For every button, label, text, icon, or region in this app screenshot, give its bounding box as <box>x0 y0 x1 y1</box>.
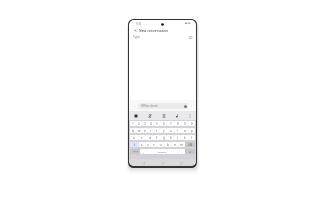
staticText: ⌫ <box>188 143 193 146</box>
staticText: f <box>156 136 158 140</box>
button[interactable]: Add <box>190 104 193 107</box>
staticText: c <box>153 143 155 147</box>
button[interactable]: Nav 2 <box>178 160 184 166</box>
staticText: x <box>147 143 149 147</box>
button[interactable]: 5 <box>154 121 160 126</box>
button[interactable]: Expand <box>133 104 136 107</box>
button[interactable]: k <box>181 135 188 140</box>
staticText: z <box>141 143 143 147</box>
staticText: ↵ <box>189 150 192 153</box>
button[interactable]: h <box>167 135 174 140</box>
button[interactable]: i <box>174 128 181 133</box>
button[interactable]: e <box>142 128 148 133</box>
button[interactable]: 1 <box>130 121 136 126</box>
staticText: ⇧ <box>133 143 136 147</box>
staticText: d <box>149 136 151 140</box>
staticText: ?123 <box>133 150 138 153</box>
staticText: □ <box>180 162 183 165</box>
staticText: i <box>177 129 178 133</box>
button[interactable]: ⌫ <box>185 142 195 147</box>
button[interactable]: z <box>139 142 145 147</box>
staticText: v <box>160 143 162 147</box>
button[interactable]: 0 <box>188 121 195 126</box>
button[interactable]: Nav 0 <box>141 160 147 166</box>
button[interactable]: ?123 <box>130 149 140 154</box>
button[interactable]: Nav 1 <box>160 160 166 166</box>
button[interactable]: 9 <box>181 121 188 126</box>
staticText: ◁ <box>143 162 145 165</box>
staticText: 3 <box>144 122 146 126</box>
button[interactable]: s <box>138 135 146 140</box>
button[interactable]: 6 <box>160 121 167 126</box>
staticText: 9 <box>184 122 186 126</box>
staticText: New conversation <box>139 28 169 33</box>
button[interactable]: p <box>188 128 195 133</box>
staticText: p <box>191 129 193 133</box>
button[interactable]: Voice <box>170 111 183 120</box>
staticText: l <box>191 136 192 140</box>
button[interactable]: d <box>146 135 153 140</box>
button[interactable]: English <box>147 149 178 154</box>
button[interactable]: v <box>157 142 164 147</box>
button[interactable]: c <box>151 142 157 147</box>
staticText: q <box>132 129 134 133</box>
button[interactable]: ⇧ <box>130 142 139 147</box>
staticText: t <box>156 129 158 133</box>
button[interactable]: t <box>154 128 160 133</box>
button[interactable]: q <box>130 128 136 133</box>
staticText: b <box>167 143 169 147</box>
staticText: 8 <box>177 122 179 126</box>
button[interactable]: l <box>188 135 195 140</box>
button[interactable]: 3 <box>142 121 148 126</box>
staticText: 7 <box>170 122 172 126</box>
button[interactable]: 7 <box>167 121 174 126</box>
button[interactable]: o <box>181 128 188 133</box>
staticText: 0 <box>191 122 193 126</box>
button[interactable]: Settings <box>157 111 170 120</box>
button[interactable]: w <box>136 128 142 133</box>
staticText: e <box>144 129 146 133</box>
staticText: English <box>158 150 167 153</box>
staticText: . <box>181 150 182 154</box>
staticText: j <box>177 136 178 140</box>
staticText: r <box>150 129 152 133</box>
button[interactable]: Offline check <box>138 103 188 109</box>
staticText: y <box>163 129 165 133</box>
button[interactable]: n <box>171 142 178 147</box>
button[interactable]: Scan <box>189 36 192 39</box>
staticText: ○ <box>162 162 165 165</box>
staticText: h <box>170 136 172 140</box>
staticText: Type <box>133 35 141 39</box>
button[interactable]: f <box>153 135 160 140</box>
button[interactable]: u <box>167 128 174 133</box>
button[interactable]: y <box>160 128 167 133</box>
button[interactable]: j <box>174 135 181 140</box>
staticText: n <box>174 143 176 147</box>
button[interactable]: 8 <box>174 121 181 126</box>
button[interactable]: Emoji <box>129 111 143 120</box>
button[interactable]: More <box>183 111 196 120</box>
staticText: k <box>184 136 186 140</box>
button[interactable]: , <box>140 149 147 154</box>
button[interactable]: g <box>160 135 167 140</box>
button[interactable]: . <box>178 149 185 154</box>
button[interactable]: Stickers <box>143 111 157 120</box>
button[interactable]: x <box>145 142 151 147</box>
staticText: 6 <box>163 122 165 126</box>
staticText: g <box>163 136 165 140</box>
button[interactable]: 2 <box>136 121 142 126</box>
button[interactable]: r <box>148 128 154 133</box>
staticText: 2 <box>138 122 140 126</box>
button[interactable]: 4 <box>148 121 154 126</box>
button[interactable]: m <box>178 142 185 147</box>
staticText: , <box>143 150 144 154</box>
staticText: 5 <box>156 122 158 126</box>
staticText: 1 <box>132 122 134 126</box>
button[interactable]: Back <box>133 28 138 33</box>
button[interactable]: ↵ <box>185 149 195 154</box>
staticText: ● ▮ ▮ <box>185 22 191 25</box>
button[interactable]: a <box>130 135 138 140</box>
staticText: s <box>141 136 143 140</box>
staticText: Offline check <box>141 104 158 108</box>
button[interactable]: b <box>164 142 171 147</box>
